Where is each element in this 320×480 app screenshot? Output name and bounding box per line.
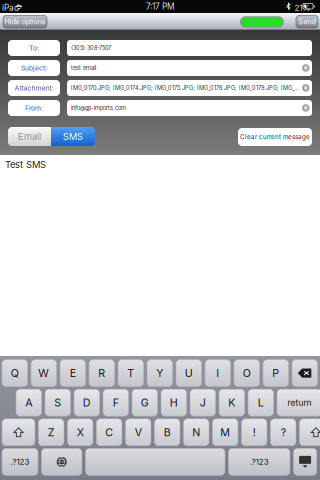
- button[interactable]: Q: [2, 360, 28, 387]
- button[interactable]: B: [154, 419, 180, 446]
- button[interactable]: I: [205, 360, 231, 387]
- button[interactable]: Shift: [2, 419, 35, 446]
- staticText: C: [105, 426, 113, 439]
- button[interactable]: Shift: [299, 419, 320, 446]
- staticText: B: [164, 426, 171, 439]
- staticText: Q: [11, 367, 19, 379]
- button[interactable]: M: [212, 419, 238, 446]
- staticText: K: [228, 396, 235, 409]
- staticText: E: [70, 367, 76, 379]
- button[interactable]: Y: [147, 360, 173, 387]
- button[interactable]: Z: [38, 419, 64, 446]
- staticText: Send: [298, 17, 315, 26]
- button[interactable]: X: [67, 419, 93, 446]
- button[interactable]: Hide keyboard: [293, 448, 317, 475]
- staticText: From:: [25, 104, 43, 112]
- button[interactable]: SMS: [51, 127, 95, 146]
- staticText: A: [25, 396, 32, 409]
- button[interactable]: Send: [296, 15, 318, 28]
- staticText: 21%: [294, 3, 310, 13]
- staticText: W: [38, 367, 49, 379]
- button[interactable]: W: [31, 360, 57, 387]
- button[interactable]: N: [183, 419, 209, 446]
- staticText: .?123: [250, 457, 269, 467]
- button[interactable]: Delete: [292, 360, 318, 387]
- button[interactable]: L: [248, 389, 274, 416]
- staticText: return: [287, 397, 311, 408]
- button[interactable]: ?: [270, 419, 296, 446]
- staticText: Z: [48, 426, 55, 439]
- button[interactable]: R: [89, 360, 115, 387]
- button[interactable]: Email: [8, 127, 51, 146]
- staticText: G: [141, 396, 149, 409]
- staticText: Email: [18, 131, 41, 142]
- button[interactable]: !: [241, 419, 267, 446]
- staticText: X: [77, 426, 84, 439]
- staticText: SMS: [63, 131, 83, 142]
- button[interactable]: T: [118, 360, 144, 387]
- staticText: O: [243, 367, 251, 379]
- staticText: !: [253, 426, 256, 439]
- button[interactable]: E: [60, 360, 86, 387]
- button[interactable]: D: [74, 389, 100, 416]
- staticText: Clear current message: [240, 133, 310, 141]
- staticText: J: [200, 396, 206, 409]
- staticText: S: [54, 396, 61, 409]
- staticText: info@gp-imports.com: [71, 105, 126, 111]
- button[interactable]: A: [16, 389, 42, 416]
- staticText: U: [185, 367, 193, 379]
- button[interactable]: P: [263, 360, 289, 387]
- staticText: 7:17 PM: [146, 1, 174, 11]
- button[interactable]: G: [132, 389, 158, 416]
- staticText: Test SMS: [5, 159, 46, 170]
- button[interactable]: O: [234, 360, 260, 387]
- button[interactable]: C: [96, 419, 122, 446]
- staticText: test email: [71, 65, 96, 71]
- button[interactable]: return: [277, 389, 320, 416]
- button[interactable]: J: [190, 389, 216, 416]
- staticText: H: [170, 396, 178, 409]
- button[interactable]: H: [161, 389, 187, 416]
- button[interactable]: Next keyboard: [41, 448, 82, 475]
- button[interactable]: V: [125, 419, 151, 446]
- staticText: Hide options: [4, 17, 45, 26]
- staticText: IMG_0170.JPG; IMG_0174.JPG; IMG_0175.JPG…: [71, 85, 299, 91]
- button[interactable]: Hide options: [3, 15, 47, 28]
- button[interactable]: U: [176, 360, 202, 387]
- button[interactable]: Clear current message: [238, 128, 312, 146]
- staticText: N: [192, 426, 200, 439]
- button[interactable]: .?123: [2, 448, 38, 475]
- staticText: P: [272, 367, 279, 379]
- staticText: Y: [156, 367, 163, 379]
- staticText: R: [98, 367, 105, 379]
- staticText: F: [113, 396, 119, 409]
- staticText: Subject:: [21, 64, 47, 72]
- staticText: M: [220, 426, 230, 439]
- staticText: .?123: [10, 457, 29, 467]
- staticText: ?: [281, 426, 286, 439]
- button[interactable]: K: [219, 389, 245, 416]
- staticText: V: [135, 426, 142, 439]
- button[interactable]: S: [45, 389, 71, 416]
- button[interactable]: [85, 448, 225, 475]
- staticText: Attachment:: [14, 84, 53, 92]
- button[interactable]: F: [103, 389, 129, 416]
- staticText: T: [127, 367, 134, 379]
- button[interactable]: .?123: [228, 448, 290, 475]
- staticText: (305) 308-7507: [71, 45, 111, 51]
- staticText: I: [216, 367, 219, 379]
- staticText: D: [83, 396, 91, 409]
- staticText: To:: [29, 44, 39, 52]
- staticText: iPad: [2, 3, 19, 13]
- staticText: L: [258, 396, 264, 409]
